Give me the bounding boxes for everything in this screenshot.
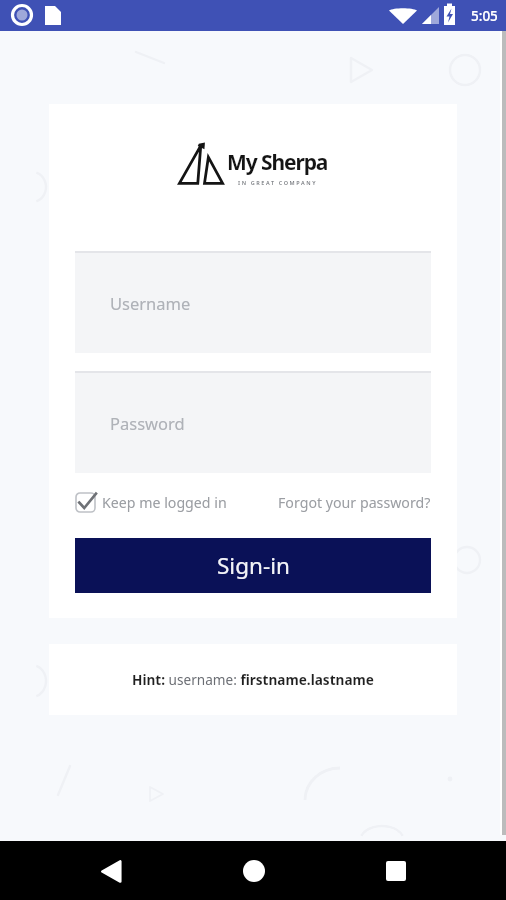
button[interactable]: Back — [87, 847, 135, 895]
button[interactable]: Username — [75, 251, 431, 353]
staticText: Keep me logged in — [102, 493, 227, 512]
staticText: IN GREAT COMPANY — [238, 179, 318, 186]
button[interactable]: Home — [230, 847, 278, 895]
staticText: My Sherpa — [227, 148, 328, 177]
button[interactable]: Keep me logged in — [75, 492, 227, 513]
button[interactable]: Recents — [372, 847, 420, 895]
staticText: 5:05 — [471, 7, 498, 25]
button[interactable]: Forgot your password? — [278, 493, 431, 512]
staticText: Password — [110, 412, 185, 434]
staticText: Hint: username: firstname.lastname — [132, 670, 374, 689]
button[interactable]: Password — [75, 371, 431, 473]
button[interactable]: Sign-in — [75, 538, 431, 593]
staticText: Sign-in — [217, 550, 290, 581]
staticText: Username — [110, 292, 191, 314]
